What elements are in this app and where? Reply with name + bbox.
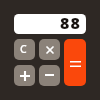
staticText: 88	[60, 14, 82, 32]
staticText: C	[20, 42, 27, 56]
button[interactable]: Multiply	[39, 39, 60, 60]
button[interactable]: Equals	[64, 39, 86, 86]
button[interactable]: Subtract	[39, 65, 60, 86]
button[interactable]: Clear	[14, 39, 35, 60]
button[interactable]: 88	[14, 14, 86, 34]
button[interactable]: Add	[14, 65, 35, 86]
